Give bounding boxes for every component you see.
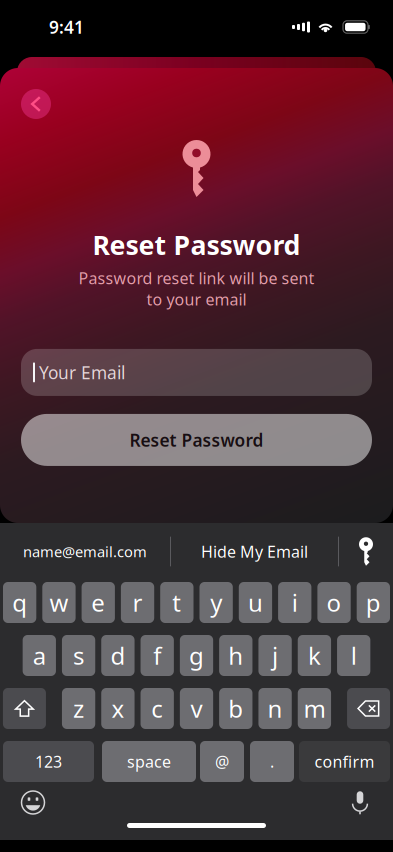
button[interactable]: Dictation <box>340 784 380 820</box>
button[interactable]: b <box>219 688 252 729</box>
button[interactable]: 123 <box>3 741 94 782</box>
button[interactable]: z <box>62 688 95 729</box>
button[interactable]: name@email.com <box>0 532 170 570</box>
button[interactable]: m <box>298 688 331 729</box>
staticText: w <box>49 587 68 618</box>
button[interactable]: w <box>42 582 76 623</box>
button[interactable]: h <box>219 635 252 676</box>
staticText: g <box>189 640 204 671</box>
staticText: Password reset link will be sent <box>78 267 314 289</box>
button[interactable]: @ <box>200 741 244 782</box>
button[interactable]: i <box>278 582 311 623</box>
button[interactable]: c <box>140 688 174 729</box>
button[interactable]: o <box>317 582 351 623</box>
button[interactable]: t <box>160 582 193 623</box>
button[interactable]: v <box>180 688 213 729</box>
button[interactable]: y <box>199 582 233 623</box>
staticText: n <box>268 693 283 724</box>
button[interactable]: k <box>298 635 331 676</box>
staticText: e <box>91 587 105 618</box>
button[interactable]: u <box>239 582 272 623</box>
staticText: space <box>127 751 171 772</box>
button[interactable]: l <box>337 635 370 676</box>
staticText: q <box>12 587 27 618</box>
button[interactable]: n <box>258 688 292 729</box>
button[interactable]: s <box>62 635 95 676</box>
staticText: i <box>292 587 298 618</box>
button[interactable]: x <box>101 688 134 729</box>
staticText: b <box>228 693 243 724</box>
button[interactable]: g <box>180 635 213 676</box>
staticText: t <box>172 587 181 618</box>
staticText: s <box>73 640 84 671</box>
staticText: k <box>308 640 321 671</box>
staticText: Hide My Email <box>201 541 308 562</box>
button[interactable]: confirm <box>299 741 390 782</box>
staticText: 123 <box>35 751 62 772</box>
staticText: Reset Password <box>92 227 300 262</box>
button[interactable]: p <box>357 582 390 623</box>
button[interactable]: Reset Password <box>0 414 393 466</box>
staticText: Reset Password <box>129 428 263 451</box>
button[interactable]: Back <box>21 89 51 119</box>
staticText: y <box>210 587 222 618</box>
staticText: d <box>110 640 125 671</box>
staticText: v <box>190 693 202 724</box>
staticText: x <box>111 693 124 724</box>
staticText: o <box>326 587 341 618</box>
staticText: m <box>303 693 325 724</box>
button[interactable]: r <box>121 582 154 623</box>
staticText: . <box>270 751 274 772</box>
staticText: name@email.com <box>23 542 147 561</box>
staticText: j <box>272 640 278 671</box>
staticText: @ <box>215 751 229 772</box>
button[interactable]: Your Email <box>0 349 393 396</box>
staticText: c <box>151 693 163 724</box>
button[interactable]: Emoji <box>13 784 53 820</box>
button[interactable]: d <box>101 635 134 676</box>
staticText: a <box>33 640 46 671</box>
staticText: f <box>153 640 161 671</box>
staticText: confirm <box>314 751 374 772</box>
button[interactable]: Delete <box>347 688 390 729</box>
staticText: to your email <box>146 289 246 310</box>
staticText: u <box>248 587 263 618</box>
button[interactable]: Passwords <box>339 532 393 570</box>
button[interactable]: . <box>250 741 294 782</box>
staticText: p <box>366 587 381 618</box>
staticText: Your Email <box>39 361 125 384</box>
staticText: z <box>73 693 84 724</box>
button[interactable]: Hide My Email <box>171 532 338 570</box>
staticText: r <box>132 587 142 618</box>
button[interactable]: space <box>102 741 196 782</box>
button[interactable]: e <box>82 582 115 623</box>
button[interactable]: Shift <box>3 688 46 729</box>
staticText: h <box>228 640 243 671</box>
staticText: l <box>351 640 357 671</box>
button[interactable]: j <box>258 635 292 676</box>
button[interactable]: a <box>23 635 56 676</box>
button[interactable]: q <box>3 582 36 623</box>
staticText: 9:41 <box>49 15 84 38</box>
button[interactable]: f <box>140 635 174 676</box>
